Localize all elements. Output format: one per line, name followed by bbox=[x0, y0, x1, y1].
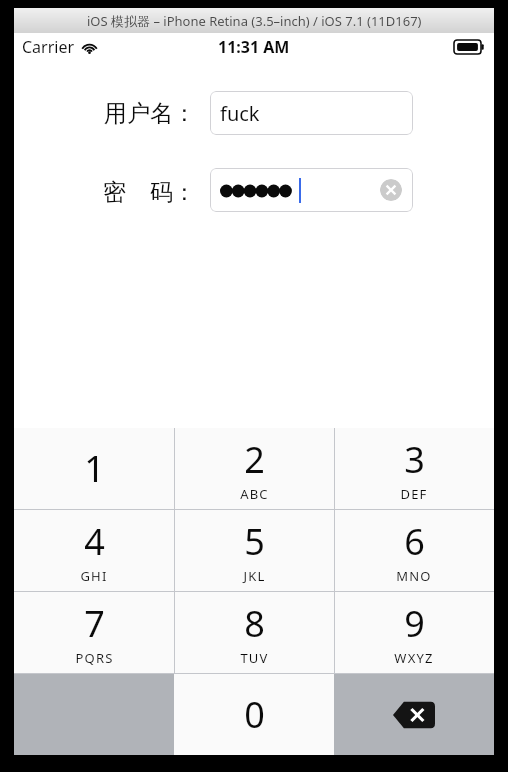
staticText: 0 bbox=[244, 690, 265, 739]
staticText: JKL bbox=[243, 567, 266, 585]
staticText: iOS 模拟器 – iPhone Retina (3.5–inch) / iOS… bbox=[87, 12, 422, 30]
staticText: 7 bbox=[84, 599, 105, 648]
staticText: 2 bbox=[244, 435, 265, 484]
staticText: 8 bbox=[244, 599, 265, 648]
button[interactable]: 6 bbox=[334, 510, 494, 591]
staticText: WXYZ bbox=[394, 649, 434, 667]
button[interactable]: Backspace bbox=[334, 674, 494, 755]
staticText: Carrier bbox=[22, 36, 75, 58]
staticText: ABC bbox=[240, 485, 269, 503]
button[interactable]: 3 bbox=[334, 428, 494, 509]
button[interactable]: 1 bbox=[14, 428, 174, 509]
staticText: 密 码： bbox=[103, 175, 196, 206]
button[interactable]: 0 bbox=[174, 674, 334, 755]
staticText: 5 bbox=[244, 517, 265, 566]
staticText: 用户名： bbox=[104, 99, 196, 128]
staticText: 6 bbox=[404, 517, 425, 566]
staticText: fuck bbox=[220, 100, 260, 127]
button[interactable]: 2 bbox=[174, 428, 334, 509]
staticText: GHI bbox=[80, 567, 108, 585]
staticText: MNO bbox=[396, 567, 432, 585]
staticText: 4 bbox=[84, 517, 105, 566]
button[interactable]: 9 bbox=[334, 592, 494, 673]
staticText: TUV bbox=[240, 649, 269, 667]
button[interactable]: 5 bbox=[174, 510, 334, 591]
button[interactable]: fuck bbox=[210, 91, 413, 135]
staticText: 3 bbox=[404, 435, 425, 484]
staticText: 9 bbox=[404, 599, 425, 648]
button[interactable]: 4 bbox=[14, 510, 174, 591]
button[interactable]: Clear text bbox=[210, 168, 413, 212]
button[interactable]: 7 bbox=[14, 592, 174, 673]
staticText: DEF bbox=[400, 485, 428, 503]
staticText: PQRS bbox=[75, 649, 114, 667]
staticText: 1 bbox=[84, 444, 105, 493]
button[interactable]: Clear text bbox=[380, 179, 402, 201]
staticText: 11:31 AM bbox=[218, 36, 290, 58]
button[interactable]: 8 bbox=[174, 592, 334, 673]
